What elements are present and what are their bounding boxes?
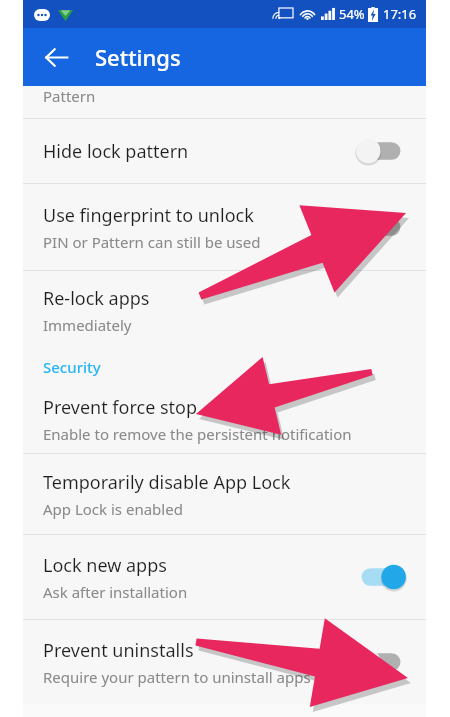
staticText: PIN or Pattern can still be used <box>43 232 261 252</box>
button[interactable]: Off <box>354 645 408 679</box>
button[interactable]: Pattern <box>23 86 426 118</box>
staticText: Require your pattern to uninstall apps <box>43 667 311 687</box>
button[interactable]: Hide lock pattern <box>23 119 426 183</box>
button[interactable]: Off <box>354 134 408 168</box>
staticText: Use fingerprint to unlock <box>43 203 254 228</box>
button[interactable]: Temporarily disable App Lock <box>23 454 426 534</box>
button[interactable]: Prevent force stop <box>23 385 426 453</box>
button[interactable]: Lock new apps <box>23 535 426 619</box>
button[interactable]: Prevent uninstalls <box>23 620 426 704</box>
staticText: 54% <box>339 5 365 23</box>
staticText: Ask after installation <box>43 582 188 602</box>
staticText: Prevent uninstalls <box>43 638 194 663</box>
button[interactable]: Re-lock apps <box>23 271 426 349</box>
staticText: 17:16 <box>383 5 417 23</box>
staticText: Hide lock pattern <box>43 139 189 164</box>
staticText: Enable to remove the persistent notifica… <box>43 424 352 444</box>
staticText: Security <box>43 357 101 377</box>
staticText: Immediately <box>43 315 132 335</box>
staticText: Settings <box>95 42 181 72</box>
staticText: Temporarily disable App Lock <box>43 470 291 495</box>
button[interactable]: Off <box>354 210 408 244</box>
staticText: Pattern <box>43 86 96 106</box>
staticText: App Lock is enabled <box>43 499 183 519</box>
button[interactable]: On <box>354 560 408 594</box>
staticText: Lock new apps <box>43 553 167 578</box>
button[interactable]: Use fingerprint to unlock <box>23 184 426 270</box>
staticText: Prevent force stop <box>43 395 198 420</box>
staticText: Re-lock apps <box>43 286 150 311</box>
button[interactable]: Back <box>33 34 79 80</box>
